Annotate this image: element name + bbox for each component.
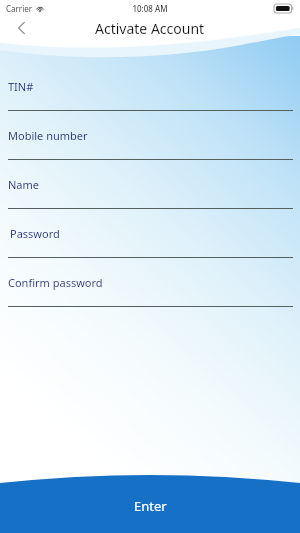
button[interactable]: TIN# — [0, 62, 300, 111]
button[interactable]: Mobile number — [0, 111, 300, 160]
staticText: TIN# — [8, 79, 34, 94]
button[interactable]: Password — [0, 209, 300, 258]
staticText: Activate Account — [95, 19, 205, 38]
button[interactable]: Name — [0, 160, 300, 209]
staticText: Password — [10, 226, 60, 241]
staticText: Enter — [134, 497, 167, 515]
staticText: Confirm password — [8, 275, 103, 290]
staticText: Name — [8, 177, 40, 192]
button[interactable]: Confirm password — [0, 258, 300, 307]
staticText: Carrier — [6, 3, 33, 14]
button[interactable]: Back — [0, 16, 44, 40]
staticText: 10:08 AM — [132, 3, 168, 14]
staticText: Mobile number — [8, 128, 88, 143]
button[interactable]: Enter — [0, 471, 300, 533]
